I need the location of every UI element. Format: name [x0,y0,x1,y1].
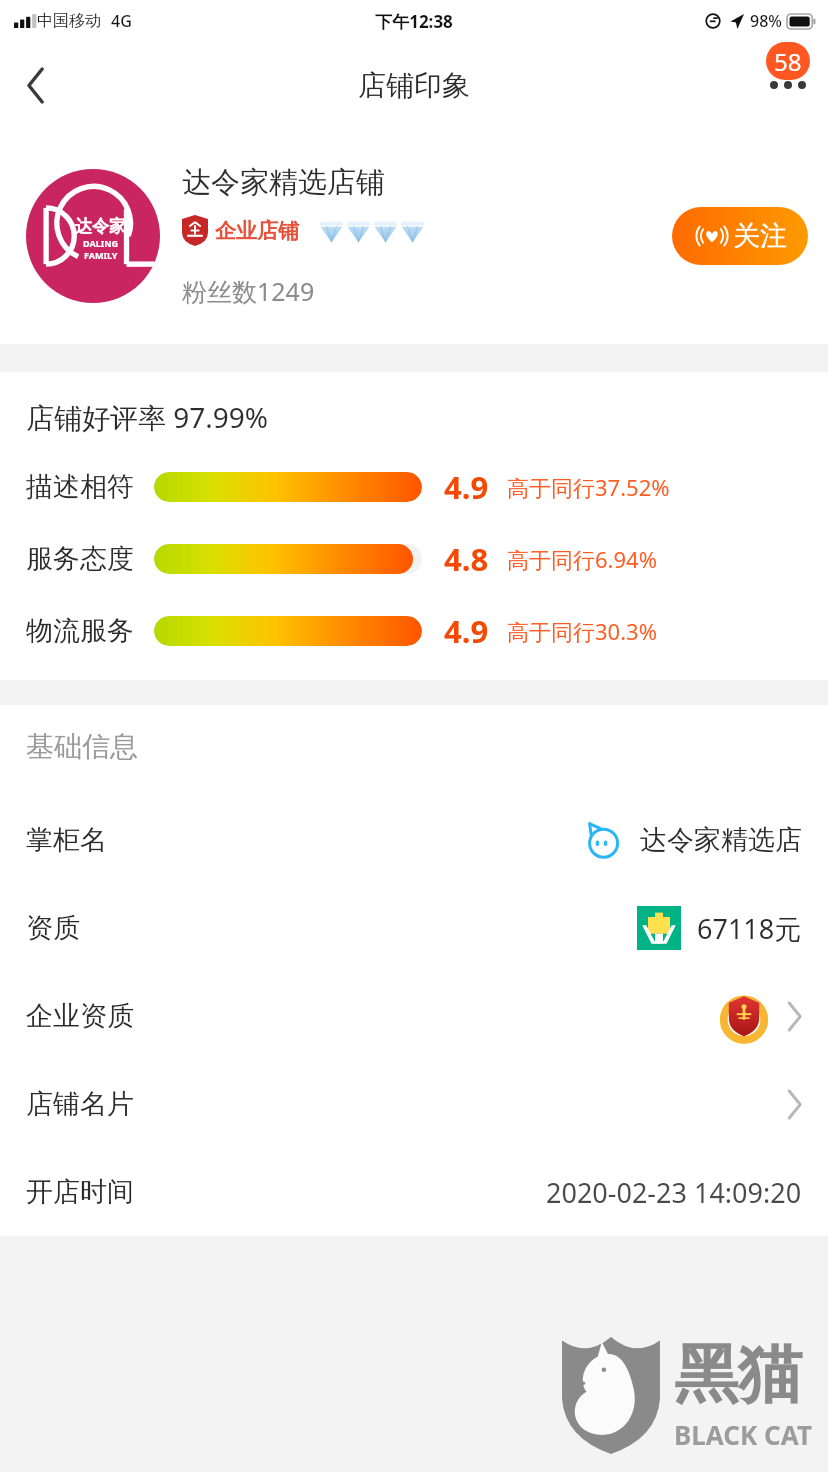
button[interactable]: 关注 [672,207,808,265]
button[interactable]: Back [6,55,66,115]
staticText: 高于同行37.52% [507,472,670,502]
staticText: BLACK CAT [674,1417,812,1452]
staticText: 高于同行6.94% [507,544,657,574]
staticText: 资质 [26,911,80,945]
staticText: 店铺好评率 97.99% [26,398,269,436]
staticText: 基础信息 [26,729,138,764]
staticText: 物流服务 [26,614,134,648]
staticText: 关注 [733,219,787,253]
staticText: 98% [750,10,782,32]
staticText: 开店时间 [26,1175,134,1209]
staticText: 服务态度 [26,542,134,576]
staticText: 店铺印象 [358,68,470,103]
staticText: 4.8 [444,538,489,580]
staticText: 掌柜名 [26,823,107,857]
staticText: 67118元 [697,910,802,947]
staticText: 4.9 [444,610,489,652]
button[interactable]: More options [758,55,818,115]
staticText: 中国移动 [37,11,101,31]
staticText: 黑猫 [674,1334,802,1415]
staticText: 4.9 [444,466,489,508]
button[interactable]: 企业资质 [0,972,828,1060]
staticText: 达令家精选店铺 [182,164,385,201]
staticText: 企业店铺 [215,218,299,244]
staticText: 58 [774,45,802,78]
staticText: 达令家 [75,216,126,237]
staticText: 企业资质 [26,999,134,1033]
staticText: FAMILY [84,249,118,261]
staticText: 达令家精选店 [640,823,802,857]
staticText: 描述相符 [26,470,134,504]
staticText: 高于同行30.3% [507,616,657,646]
staticText: DALING [83,237,119,249]
staticText: 4G [111,10,132,32]
staticText: 粉丝数1249 [182,274,315,308]
staticText: 2020-02-23 14:09:20 [546,1174,802,1211]
button[interactable]: 店铺名片 [0,1060,828,1148]
staticText: 下午12:38 [375,10,453,33]
staticText: 店铺名片 [26,1087,134,1121]
